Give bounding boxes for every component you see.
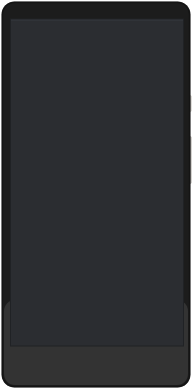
button[interactable]: Phone device preview bbox=[0, 0, 194, 389]
